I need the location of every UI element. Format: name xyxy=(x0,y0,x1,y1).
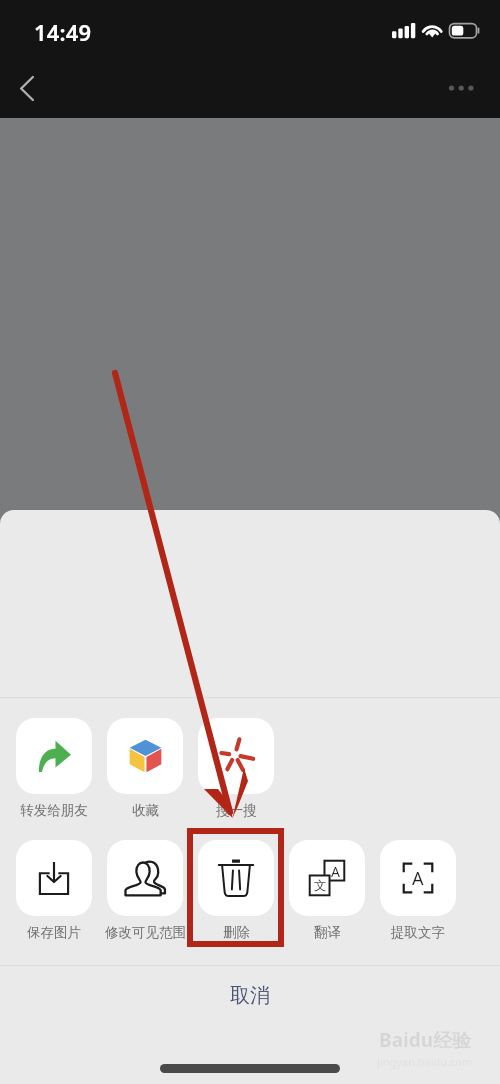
staticText: Baidu经验 xyxy=(379,1027,472,1053)
staticText: 修改可见范围 xyxy=(105,924,186,941)
button[interactable]: More options xyxy=(440,65,486,111)
staticText: 提取文字 xyxy=(391,924,445,941)
staticText: 14:49 xyxy=(34,17,92,47)
staticText: 搜一搜 xyxy=(216,802,257,819)
staticText: 保存图片 xyxy=(27,924,81,941)
staticText: 文 xyxy=(314,878,327,894)
button[interactable]: Back xyxy=(4,65,50,111)
button[interactable]: 删除 xyxy=(198,840,274,941)
staticText: 收藏 xyxy=(132,802,159,819)
button[interactable]: 搜一搜 xyxy=(198,718,274,819)
button[interactable]: A xyxy=(289,840,365,941)
button[interactable]: 收藏 xyxy=(107,718,183,819)
button[interactable]: 修改可见范围 xyxy=(107,840,183,941)
staticText: 删除 xyxy=(223,924,250,941)
button[interactable]: 保存图片 xyxy=(16,840,92,941)
button[interactable]: 转发给朋友 xyxy=(16,718,92,819)
staticText: 转发给朋友 xyxy=(20,802,88,819)
staticText: 翻译 xyxy=(314,924,341,941)
staticText: A xyxy=(412,866,424,891)
button[interactable]: A xyxy=(380,840,456,941)
staticText: 取消 xyxy=(230,983,270,1008)
button[interactable]: 取消 xyxy=(0,966,500,1024)
staticText: A xyxy=(331,862,340,881)
